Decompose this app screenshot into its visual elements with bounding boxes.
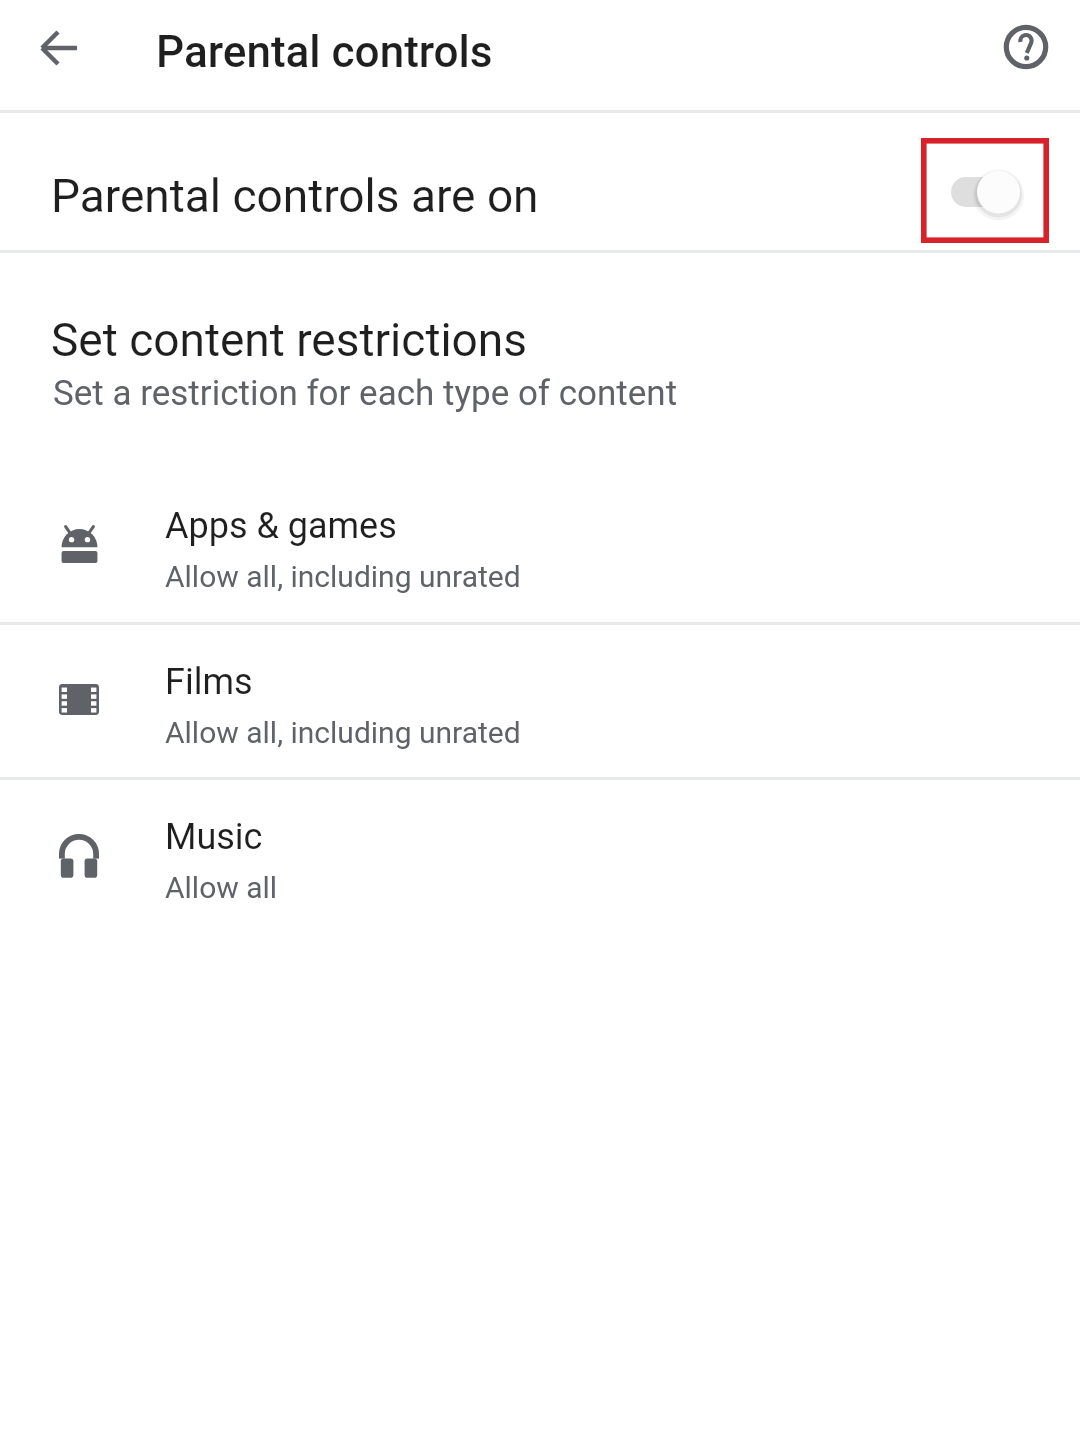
button[interactable]: Music <box>0 777 1080 932</box>
staticText: Films <box>165 660 253 703</box>
staticText: Allow all, including unrated <box>165 714 521 750</box>
staticText: Apps & games <box>165 504 397 547</box>
staticText: Set a restriction for each type of conte… <box>53 372 678 414</box>
button[interactable]: Parental controls are on <box>0 110 1080 250</box>
staticText: Allow all <box>165 869 278 905</box>
staticText: Parental controls are on <box>51 168 539 223</box>
button[interactable]: Navigate up <box>22 12 94 84</box>
button[interactable]: Films <box>0 622 1080 777</box>
staticText: Allow all, including unrated <box>165 558 521 594</box>
button[interactable]: Help <box>990 11 1062 83</box>
staticText: Music <box>165 815 263 858</box>
button[interactable]: Turn off parental controls <box>940 147 1040 237</box>
staticText: Parental controls <box>156 25 493 78</box>
button[interactable]: Apps & games <box>0 466 1080 621</box>
staticText: Set content restrictions <box>51 312 527 367</box>
